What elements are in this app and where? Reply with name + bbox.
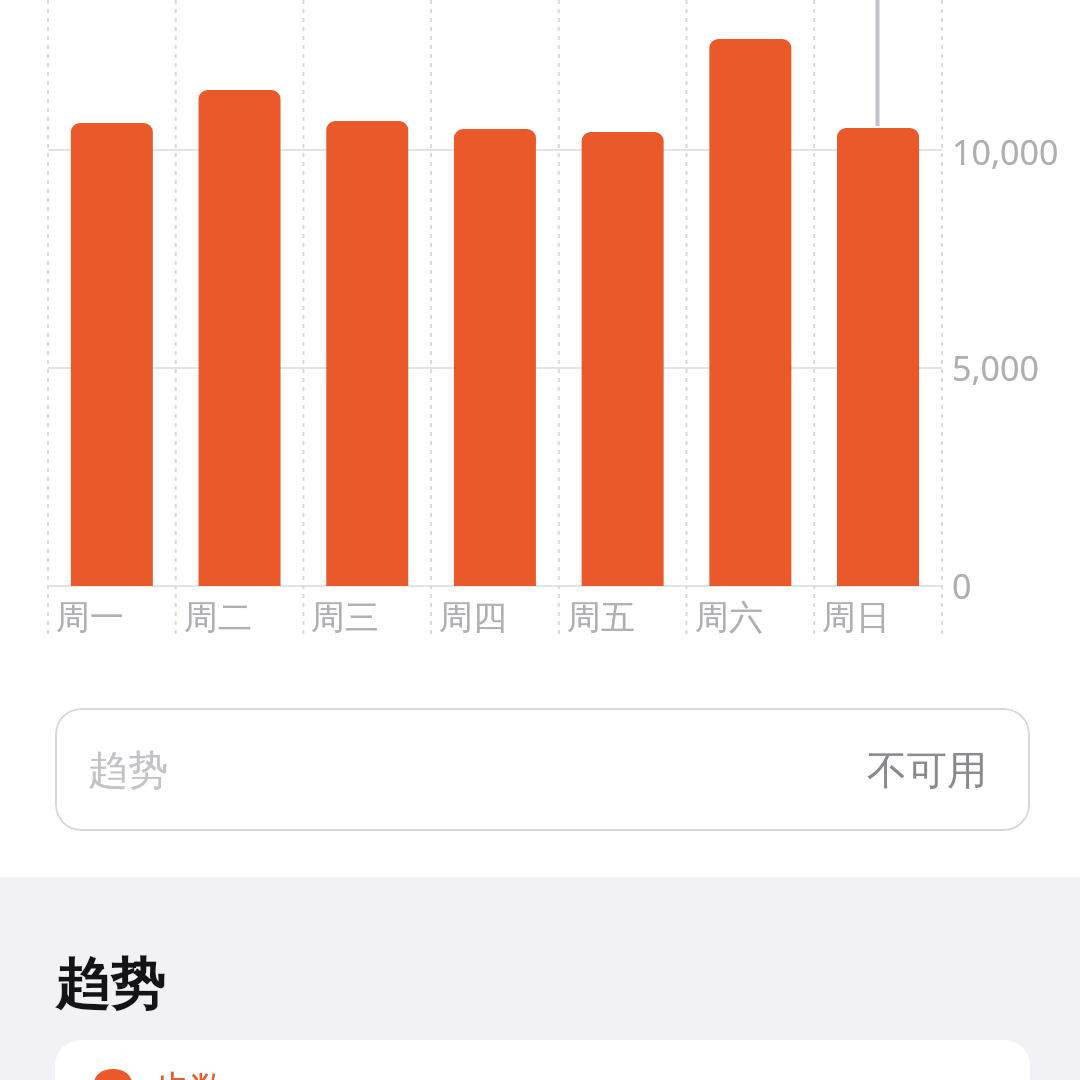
button[interactable]: 趋势 [55,708,1030,831]
staticText: 周五 [567,596,635,639]
staticText: 步数 [152,1066,228,1080]
staticText: 10,000 [952,129,1059,175]
staticText: 5,000 [952,345,1039,391]
staticText: 周六 [695,596,763,639]
staticText: 周二 [184,596,252,639]
staticText: 趋势 [55,950,165,1014]
button[interactable] [55,1040,1030,1080]
staticText: 0 [952,563,972,609]
staticText: 趋势 [88,745,168,795]
staticText: 不可用 [867,745,987,795]
staticText: 周四 [439,596,507,639]
staticText: 周一 [56,596,124,639]
staticText: 周三 [311,596,379,639]
staticText: 周日 [822,596,890,639]
